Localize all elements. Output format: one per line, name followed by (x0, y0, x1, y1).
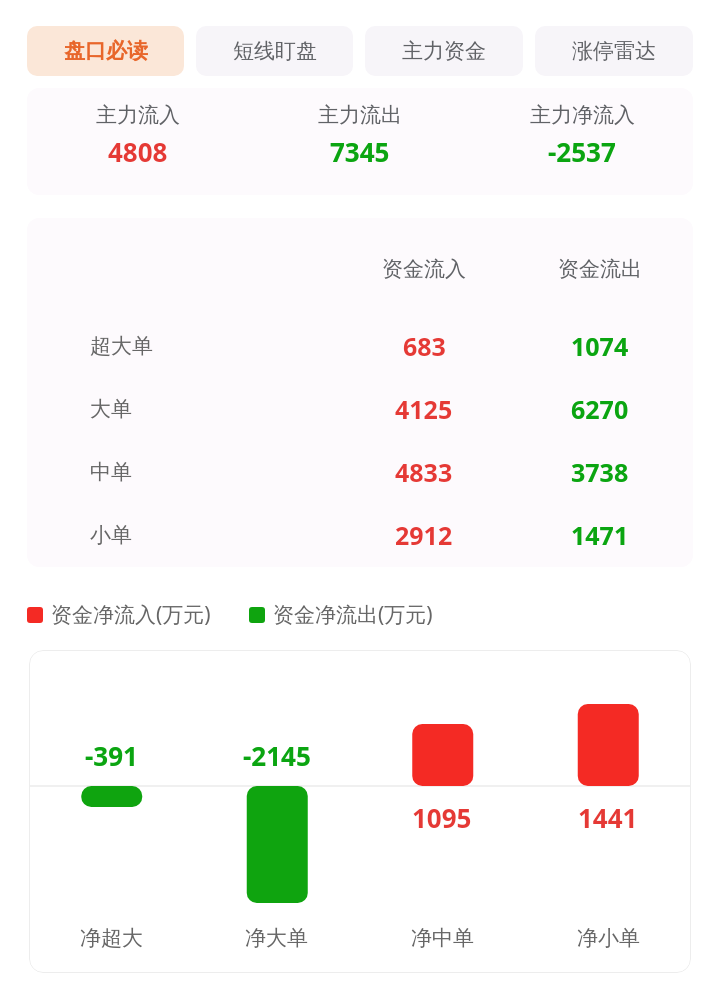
staticText: 2912 (395, 518, 453, 552)
staticText: 主力资金 (402, 38, 486, 64)
staticText: 3738 (571, 455, 629, 489)
button[interactable]: 中单 (27, 440, 693, 503)
button[interactable]: 大单 (27, 377, 693, 440)
button[interactable]: 小单 (27, 503, 693, 566)
button[interactable]: 超大单 (27, 314, 693, 377)
staticText: 资金净流出(万元) (273, 600, 433, 629)
staticText: 1441 (578, 800, 638, 835)
button[interactable]: 资金净流入(万元) (27, 600, 211, 629)
button[interactable]: 资金净流出(万元) (249, 600, 433, 629)
staticText: 超大单 (90, 333, 153, 359)
staticText: 4833 (395, 455, 453, 489)
button[interactable]: 盘口必读 (27, 26, 184, 76)
staticText: 资金流出 (558, 256, 642, 282)
staticText: 净超大 (80, 925, 143, 951)
staticText: 1074 (571, 329, 629, 363)
staticText: 短线盯盘 (233, 38, 317, 64)
staticText: 净小单 (577, 925, 640, 951)
staticText: 资金净流入(万元) (51, 600, 211, 629)
staticText: 中单 (90, 459, 132, 485)
staticText: 683 (403, 329, 446, 363)
staticText: 4125 (395, 392, 453, 426)
staticText: 净中单 (411, 925, 474, 951)
staticText: -391 (85, 738, 138, 773)
staticText: 1095 (412, 800, 472, 835)
staticText: 1471 (571, 518, 629, 552)
staticText: 主力流入 (96, 102, 180, 128)
staticText: 资金流入 (382, 256, 466, 282)
button[interactable]: 主力流入 (27, 102, 249, 169)
button[interactable]: 主力流出 (249, 102, 471, 169)
staticText: 主力净流入 (530, 102, 635, 128)
staticText: 大单 (90, 396, 132, 422)
staticText: 净大单 (245, 925, 308, 951)
staticText: -2537 (548, 134, 616, 169)
staticText: 主力流出 (318, 102, 402, 128)
button[interactable]: 主力净流入 (471, 102, 693, 169)
staticText: -2145 (243, 738, 311, 773)
staticText: 7345 (330, 134, 390, 169)
staticText: 4808 (108, 134, 168, 169)
staticText: 6270 (571, 392, 629, 426)
staticText: 涨停雷达 (572, 38, 656, 64)
button[interactable]: 主力资金 (365, 26, 523, 76)
button[interactable]: 短线盯盘 (196, 26, 353, 76)
button[interactable]: 涨停雷达 (535, 26, 693, 76)
staticText: 盘口必读 (64, 38, 148, 64)
staticText: 小单 (90, 522, 132, 548)
